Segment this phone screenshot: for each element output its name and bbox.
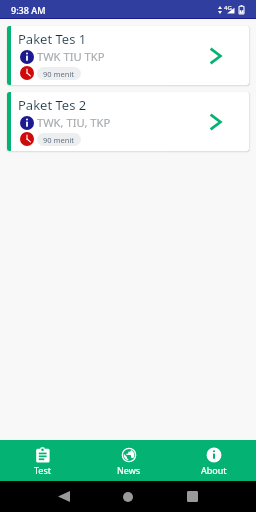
button[interactable]: News xyxy=(86,440,171,481)
staticText: Paket Tes 2 xyxy=(18,96,87,114)
staticText: Paket Tes 1 xyxy=(18,30,87,48)
staticText: 90 menit xyxy=(43,69,75,79)
button[interactable]: Home xyxy=(112,481,144,512)
button[interactable]: Back xyxy=(48,481,80,512)
button[interactable]: About xyxy=(171,440,256,481)
button[interactable]: Recents xyxy=(176,481,208,512)
staticText: 4G xyxy=(224,4,232,12)
button[interactable]: Paket Tes 1 xyxy=(7,26,249,85)
staticText: 90 menit xyxy=(43,135,75,145)
staticText: TWK TIU TKP xyxy=(37,49,105,64)
button[interactable]: Test xyxy=(0,440,86,481)
staticText: Test xyxy=(34,464,52,476)
staticText: News xyxy=(117,464,141,476)
staticText: TWK, TIU, TKP xyxy=(37,115,111,130)
staticText: About xyxy=(201,464,227,476)
staticText: 9:38 AM xyxy=(11,4,46,16)
button[interactable]: Paket Tes 2 xyxy=(7,92,249,151)
